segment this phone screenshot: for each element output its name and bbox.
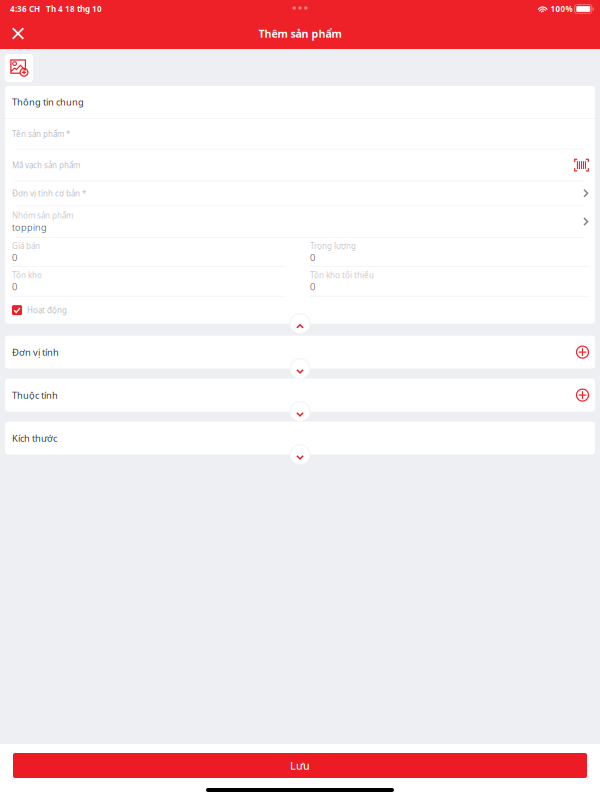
staticText: Tồn kho tối thiểu: [310, 270, 374, 280]
staticText: Nhóm sản phẩm: [12, 210, 73, 221]
staticText: topping: [12, 221, 47, 233]
staticText: Mã vạch sản phẩm: [12, 160, 80, 170]
staticText: 0: [310, 251, 315, 263]
button[interactable]: Đơn vị tính: [5, 336, 595, 369]
staticText: Tồn kho: [12, 270, 42, 280]
staticText: 100%: [550, 4, 572, 14]
button[interactable]: Add photo: [5, 54, 33, 82]
button[interactable]: Collapse section: [290, 314, 310, 334]
button[interactable]: Lưu: [13, 753, 587, 778]
staticText: Kích thước: [12, 432, 57, 444]
staticText: Thuộc tính: [12, 389, 58, 401]
button[interactable]: Hoạt động: [5, 297, 595, 324]
staticText: Lưu: [290, 758, 310, 773]
staticText: Giá bán: [12, 240, 40, 251]
button[interactable]: Kích thước: [5, 422, 595, 455]
staticText: Hoạt động: [27, 305, 67, 315]
staticText: Tên sản phẩm *: [12, 128, 70, 139]
staticText: 0: [12, 280, 17, 293]
staticText: Đơn vị tính: [12, 346, 59, 358]
staticText: Đơn vị tính cơ bản *: [12, 188, 86, 199]
staticText: Thêm sản phẩm: [258, 26, 341, 41]
button[interactable]: Expand section: [290, 359, 310, 379]
staticText: 0: [12, 251, 17, 263]
staticText: Thông tin chung: [12, 96, 84, 108]
staticText: Trọng lượng: [310, 240, 356, 251]
button[interactable]: Expand section: [290, 402, 310, 422]
staticText: 0: [310, 280, 315, 293]
button[interactable]: Close: [0, 18, 36, 49]
button[interactable]: Thuộc tính: [5, 379, 595, 412]
staticText: 4:36 CH Th 4 18 thg 10: [10, 4, 102, 14]
button[interactable]: Expand section: [290, 445, 310, 465]
